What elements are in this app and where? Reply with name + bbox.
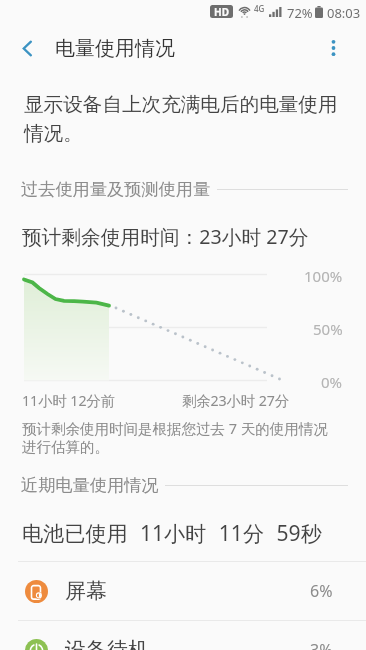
staticText: 08:03	[327, 4, 361, 22]
button[interactable]: Back	[5, 26, 49, 70]
staticText: 100%	[304, 266, 343, 286]
staticText: 11小时 12分前	[22, 391, 115, 410]
staticText: 0%	[321, 372, 343, 392]
staticText: 50%	[313, 319, 343, 339]
staticText: 过去使用量及预测使用量	[21, 178, 211, 200]
staticText: 电池已使用 11小时 11分 59秒	[22, 518, 322, 547]
staticText: 显示设备自上次充满电后的电量使用情况。	[24, 92, 346, 145]
staticText: 预计剩余使用时间是根据您过去 7 天的使用情况进行估算的。	[22, 418, 332, 456]
button[interactable]: 设备待机	[0, 621, 366, 650]
staticText: 预计剩余使用时间：23小时 27分	[22, 223, 309, 250]
staticText: 电量使用情况	[55, 36, 175, 61]
staticText: 设备待机	[65, 637, 149, 650]
staticText: 近期电量使用情况	[21, 474, 159, 496]
staticText: 3%	[310, 639, 333, 650]
staticText: 4G	[254, 3, 265, 14]
staticText: 6%	[310, 580, 333, 602]
staticText: 72%	[287, 4, 313, 22]
button[interactable]: More options	[311, 26, 355, 70]
button[interactable]: 屏幕	[0, 562, 366, 620]
staticText: 屏幕	[65, 578, 107, 604]
staticText: 剩余23小时 27分	[182, 391, 290, 410]
staticText: HD	[214, 5, 229, 18]
